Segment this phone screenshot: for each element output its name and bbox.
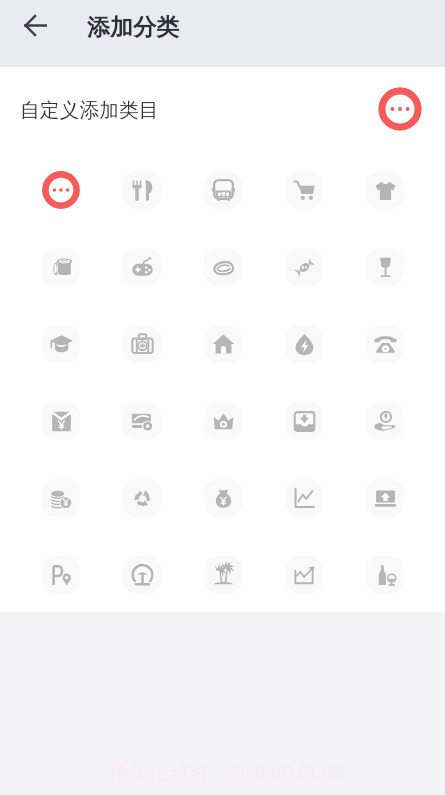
button[interactable]: More options [378,87,422,131]
button[interactable]: Home [182,305,263,382]
button[interactable]: Savings [20,459,101,536]
button[interactable]: Statistics [263,459,344,536]
button[interactable]: Drinks [344,228,425,305]
button[interactable]: Parking [20,536,101,613]
button[interactable]: Red packet [20,382,101,459]
button[interactable]: Shopping [263,151,344,228]
staticText: 添加分类 [87,13,179,42]
button[interactable]: Upload [344,459,425,536]
button[interactable]: Transport [182,151,263,228]
button[interactable]: Add category [20,151,101,228]
button[interactable]: Games [101,228,182,305]
button[interactable]: Credit card [101,382,182,459]
button[interactable]: Clothes [344,151,425,228]
button[interactable]: Income [263,382,344,459]
staticText: 自定义添加类目 [20,98,159,123]
button[interactable]: Membership [182,382,263,459]
button[interactable]: Phone bill [344,305,425,382]
button[interactable]: Candy [263,228,344,305]
button[interactable]: Snacks [182,228,263,305]
button[interactable]: Investment [263,536,344,613]
button[interactable]: Recycling [101,459,182,536]
button[interactable]: Medical [101,305,182,382]
button[interactable]: Utilities [263,305,344,382]
staticText: 指尖汇软件 · ZJHHRJ.COM [109,757,346,785]
button[interactable]: Bar [344,536,425,613]
button[interactable]: Back [14,4,56,46]
button[interactable]: Food [101,151,182,228]
button[interactable]: Daily goods [20,228,101,305]
button[interactable]: Money bag [182,459,263,536]
button[interactable]: Train [101,536,182,613]
button[interactable]: Service [344,382,425,459]
button[interactable]: Travel [182,536,263,613]
button[interactable]: Education [20,305,101,382]
